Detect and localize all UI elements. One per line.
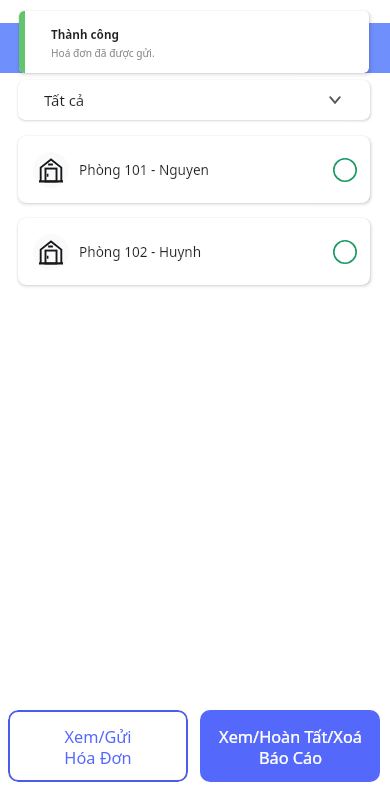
staticText: Thành công bbox=[51, 26, 119, 42]
staticText: Phòng 101 - Nguyen bbox=[79, 160, 210, 179]
staticText: Phòng 102 - Huynh bbox=[79, 242, 202, 261]
button[interactable]: Tất cả bbox=[18, 80, 370, 120]
staticText: Xem/Gửi Hóa Đơn bbox=[64, 726, 132, 769]
button[interactable]: Xem/Hoàn Tất/Xoá Báo Cáo bbox=[200, 710, 380, 782]
button[interactable]: Phòng 101 - Nguyen bbox=[18, 136, 370, 203]
button[interactable]: Xem/Gửi Hóa Đơn bbox=[8, 710, 188, 782]
button[interactable]: Thành công bbox=[19, 11, 369, 73]
other: Status bbox=[333, 240, 357, 264]
button[interactable]: Phòng 102 - Huynh bbox=[18, 218, 370, 285]
staticText: Tất cả bbox=[44, 90, 85, 110]
staticText: Xem/Hoàn Tất/Xoá Báo Cáo bbox=[219, 726, 362, 769]
other: Expand bbox=[329, 96, 341, 104]
staticText: Hoá đơn đã được gửi. bbox=[51, 46, 155, 60]
other: Status bbox=[333, 158, 357, 182]
